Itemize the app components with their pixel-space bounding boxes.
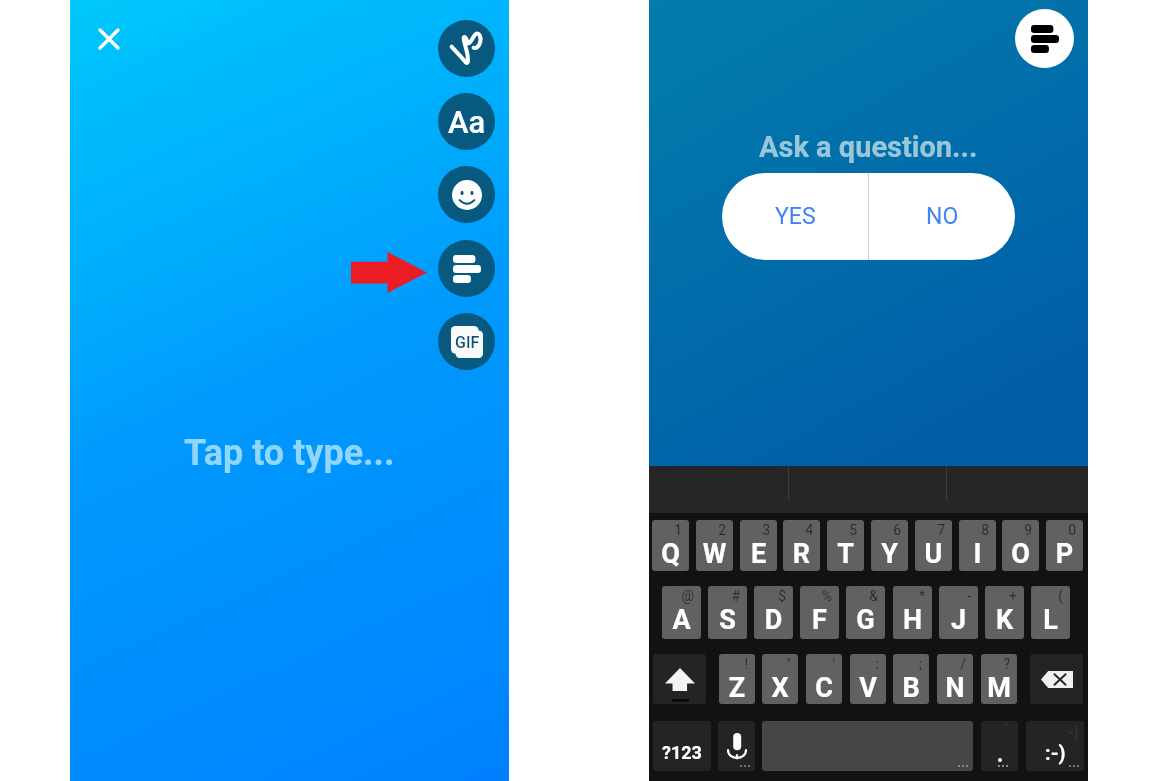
button[interactable]: + [985, 586, 1024, 639]
staticText: H [893, 604, 932, 636]
staticText: # [708, 588, 740, 604]
button[interactable]: 1 [652, 520, 689, 571]
button[interactable]: Draw [438, 20, 495, 77]
staticText: G [846, 604, 885, 636]
button[interactable]: NO [869, 173, 1015, 260]
button[interactable]: Backspace [1030, 654, 1083, 704]
button[interactable]: Stickers [438, 166, 495, 223]
staticText: % [800, 588, 832, 604]
staticText: ; [893, 656, 922, 672]
staticText: V [850, 672, 886, 704]
button[interactable]: Shift [653, 654, 706, 704]
button[interactable]: Symbols [653, 721, 711, 771]
staticText: 1 [652, 522, 682, 538]
staticText: NO [926, 203, 959, 230]
button[interactable]: 7 [915, 520, 952, 571]
staticText: W [696, 538, 733, 570]
staticText: Y [871, 538, 908, 570]
staticText: GIF [455, 333, 480, 352]
staticText: K [985, 604, 1024, 636]
staticText: " [762, 656, 791, 672]
staticText: P [1046, 538, 1083, 570]
button[interactable]: Tap to type... [70, 428, 509, 478]
button[interactable]: YES [722, 173, 868, 260]
staticText: + [985, 588, 1017, 604]
button[interactable]: % [800, 586, 839, 639]
staticText: 7 [915, 522, 945, 538]
staticText: Tap to type... [184, 432, 395, 474]
button[interactable]: * [893, 586, 932, 639]
button[interactable]: ' [806, 654, 842, 704]
button[interactable]: Voice input [718, 721, 755, 771]
staticText: M [981, 672, 1017, 704]
staticText: * [893, 588, 925, 604]
button[interactable]: ; [893, 654, 929, 704]
staticText: U [915, 538, 952, 570]
button[interactable]: Text style [438, 93, 495, 150]
staticText: L [1031, 604, 1070, 636]
button[interactable]: 6 [871, 520, 908, 571]
staticText: ( [1031, 588, 1063, 604]
button[interactable]: Emoji [1026, 721, 1084, 771]
staticText: - [939, 588, 971, 604]
staticText: T [827, 538, 864, 570]
staticText: 9 [1002, 522, 1032, 538]
staticText: 2 [696, 522, 726, 538]
staticText: F [800, 604, 839, 636]
staticText: 8 [959, 522, 989, 538]
button[interactable]: 8 [959, 520, 996, 571]
staticText: S [708, 604, 747, 636]
staticText: @ [662, 588, 694, 604]
staticText: & [846, 588, 878, 604]
staticText: ?123 [662, 742, 702, 763]
button[interactable]: : [850, 654, 886, 704]
button[interactable]: 4 [783, 520, 820, 571]
button[interactable]: / [937, 654, 973, 704]
button[interactable]: 9 [1002, 520, 1039, 571]
button[interactable]: & [846, 586, 885, 639]
staticText: 4 [783, 522, 813, 538]
staticText: J [939, 604, 978, 636]
staticText: ' [806, 656, 835, 672]
button[interactable]: @ [662, 586, 701, 639]
button[interactable]: $ [754, 586, 793, 639]
button[interactable]: 5 [827, 520, 864, 571]
staticText: Z [719, 672, 755, 704]
button[interactable]: # [708, 586, 747, 639]
button[interactable]: 2 [696, 520, 733, 571]
staticText: Ask a question... [759, 130, 978, 164]
staticText: Aa [448, 104, 486, 140]
button[interactable]: ( [1031, 586, 1070, 639]
staticText: N [937, 672, 973, 704]
staticText: O [1002, 538, 1039, 570]
staticText: $ [754, 588, 786, 604]
staticText: ! [719, 656, 748, 672]
button[interactable]: ! [719, 654, 755, 704]
staticText: R [783, 538, 820, 570]
staticText: E [740, 538, 777, 570]
staticText: / [937, 656, 966, 672]
staticText: 3 [740, 522, 770, 538]
staticText: YES [775, 203, 816, 230]
button[interactable]: 3 [740, 520, 777, 571]
button[interactable]: 0 [1046, 520, 1083, 571]
button[interactable]: Close [94, 24, 124, 54]
button[interactable]: Create poll [1015, 9, 1074, 68]
staticText: 5 [827, 522, 857, 538]
staticText: D [754, 604, 793, 636]
button[interactable]: GIF [438, 313, 495, 370]
staticText: I [959, 538, 996, 570]
button[interactable]: - [939, 586, 978, 639]
button[interactable]: Period [981, 721, 1018, 771]
button[interactable]: Poll [438, 240, 495, 297]
button[interactable]: " [762, 654, 798, 704]
staticText: 0 [1046, 522, 1076, 538]
staticText: B [893, 672, 929, 704]
button[interactable]: ? [981, 654, 1017, 704]
